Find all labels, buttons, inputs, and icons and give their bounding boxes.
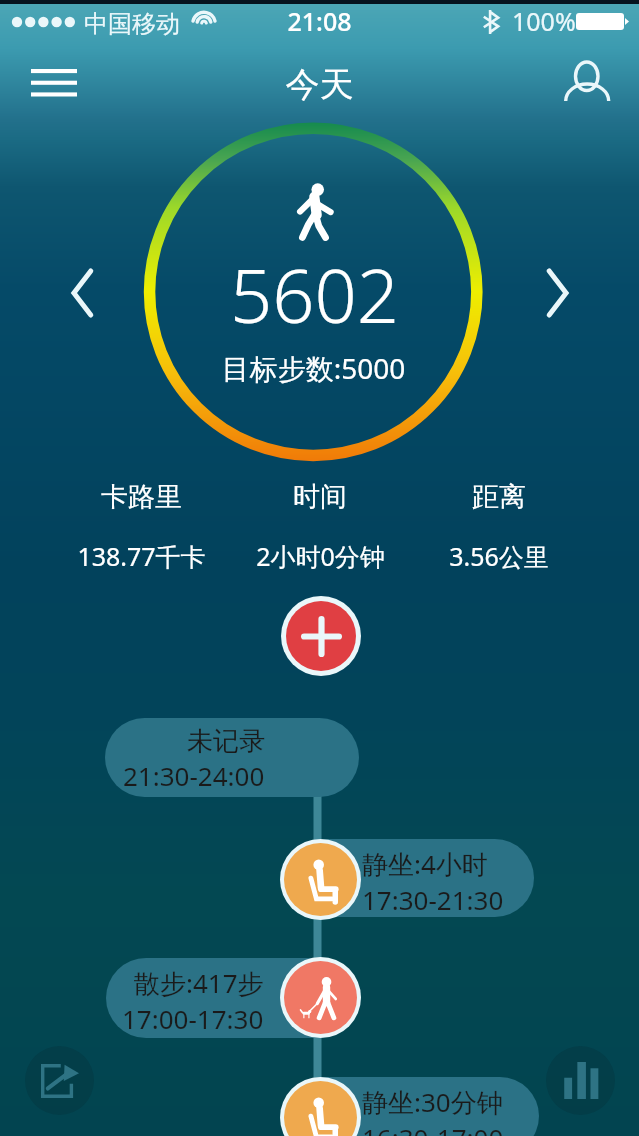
button[interactable]: 距离 [414,480,584,573]
button[interactable]: Profile [552,47,620,113]
staticText: 中国移动 [84,9,180,39]
staticText: 138.77千卡 [77,539,206,573]
staticText: 距离 [472,480,526,514]
button[interactable]: Add activity [286,601,356,671]
button[interactable]: Sitting [284,1081,357,1136]
staticText: 时间 [293,480,347,514]
staticText: 16:30-17:00 [362,1120,504,1136]
button[interactable]: Share [25,1046,94,1115]
staticText: 静坐:4小时 [362,846,488,882]
button[interactable]: Sitting [284,843,357,916]
staticText: 散步:417步 [134,965,264,1001]
button[interactable]: Previous day [48,258,118,328]
staticText: 100% [512,4,576,38]
staticText: 17:30-21:30 [362,882,504,917]
button[interactable]: 时间 [235,480,405,573]
staticText: 卡路里 [101,480,182,514]
staticText: 21:30-24:00 [123,758,265,793]
staticText: 今天 [0,63,639,106]
staticText: 17:00-17:30 [122,1001,264,1036]
button[interactable]: 卡路里 [56,480,226,573]
staticText: 3.56公里 [449,539,549,573]
button[interactable]: 未记录 [105,718,359,797]
button[interactable]: Statistics [546,1046,615,1115]
button[interactable]: 静坐:30分钟 [288,1077,539,1136]
button[interactable]: Next day [522,258,592,328]
staticText: 静坐:30分钟 [362,1084,503,1120]
staticText: 2小时0分钟 [256,539,385,573]
staticText: 5602 [0,244,634,345]
button[interactable]: 静坐:4小时 [288,839,534,917]
staticText: 21:08 [0,4,639,38]
staticText: 未记录 [187,725,265,758]
button[interactable]: Walking the dog [284,961,357,1034]
staticText: 目标步数:5000 [0,349,633,387]
button[interactable]: 散步:417步 [106,958,356,1038]
button[interactable]: Menu [10,48,98,110]
